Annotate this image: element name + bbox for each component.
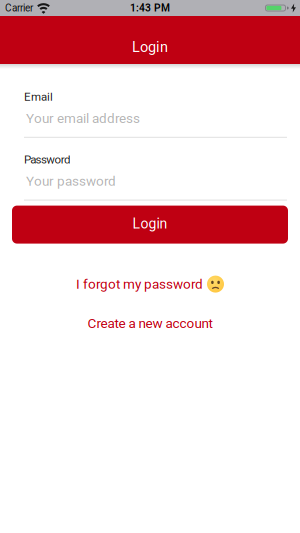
staticText: Login [132,38,168,55]
button[interactable]: Login [12,206,288,244]
staticText: Carrier [5,2,33,14]
button[interactable]: I forgot my password [76,276,224,293]
button[interactable]: Create a new account [87,316,212,331]
staticText: Login [132,215,167,232]
staticText: I forgot my password [76,276,203,292]
staticText: Create a new account [87,316,212,331]
staticText: Email [24,90,53,103]
staticText: Password [24,153,70,166]
staticText: 1:43 PM [130,2,170,14]
staticText: Your email address [26,110,140,126]
staticText: Your password [26,173,116,189]
